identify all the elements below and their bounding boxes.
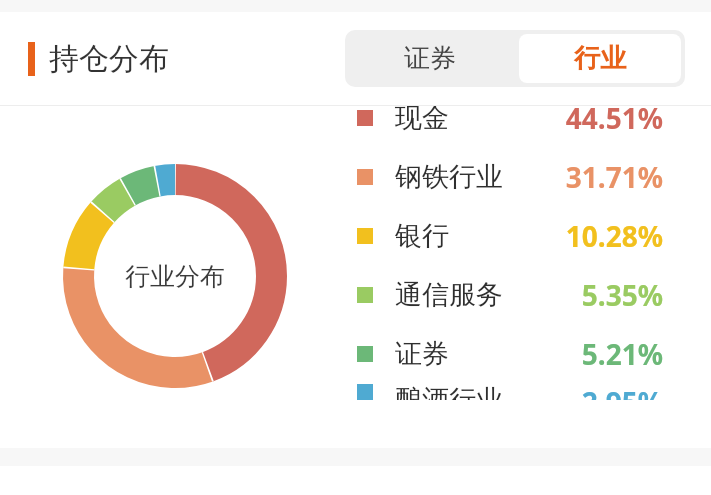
button[interactable]: 钢铁行业	[340, 147, 711, 206]
staticText: 银行	[395, 219, 449, 253]
staticText: 44.51%	[565, 106, 663, 137]
button[interactable]: 证券	[340, 324, 711, 383]
button[interactable]: 酿酒行业	[340, 383, 711, 400]
staticText: 持仓分布	[49, 40, 169, 78]
button[interactable]: 通信服务	[340, 265, 711, 324]
button[interactable]: 银行	[340, 206, 711, 265]
staticText: 证券	[404, 42, 456, 75]
staticText: 现金	[395, 106, 449, 135]
staticText: 5.35%	[581, 276, 663, 314]
staticText: 酿酒行业	[395, 383, 503, 400]
button[interactable]: 现金	[340, 106, 711, 147]
staticText: 10.28%	[565, 217, 663, 255]
staticText: 钢铁行业	[395, 160, 503, 194]
staticText: 2.95%	[581, 383, 663, 400]
button[interactable]: 行业	[519, 34, 681, 83]
button[interactable]: 持仓分布	[28, 40, 169, 78]
staticText: 通信服务	[395, 278, 503, 312]
staticText: 31.71%	[565, 158, 663, 196]
staticText: 5.21%	[581, 335, 663, 373]
button[interactable]: 证券	[345, 30, 515, 87]
staticText: 证券	[395, 337, 449, 371]
staticText: 行业分布	[125, 261, 225, 292]
staticText: 行业	[574, 42, 626, 75]
